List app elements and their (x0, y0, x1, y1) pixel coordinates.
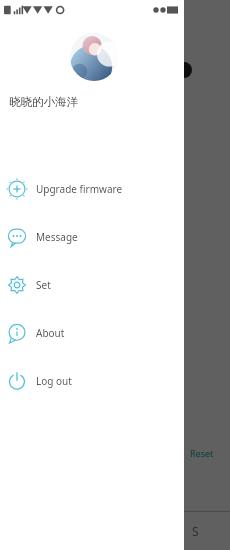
staticText: Reset (190, 447, 214, 459)
button[interactable]: Log out (0, 357, 184, 405)
staticText: About (36, 326, 65, 340)
button[interactable]: Set (0, 261, 184, 309)
button[interactable]: Message (0, 213, 184, 261)
staticText: S (192, 523, 199, 539)
staticText: Set (36, 278, 51, 292)
staticText: 晓晓的小海洋 (9, 95, 78, 109)
button[interactable]: Upgrade firmware (0, 165, 184, 213)
staticText: Message (36, 230, 78, 244)
button[interactable]: About (0, 309, 184, 357)
staticText: Log out (36, 374, 72, 388)
staticText: Upgrade firmware (36, 182, 123, 196)
